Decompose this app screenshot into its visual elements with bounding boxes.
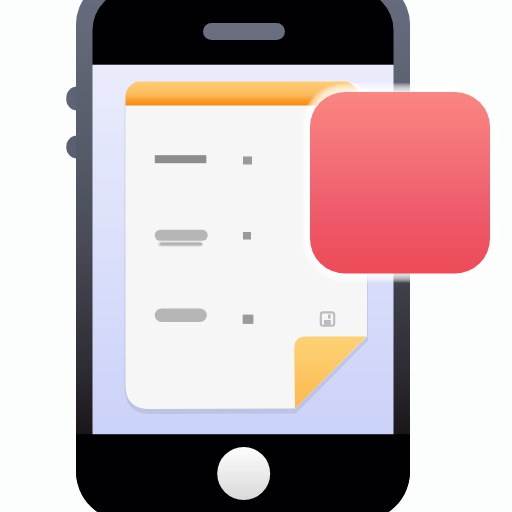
button[interactable]: Phone mockup illustration xyxy=(0,0,512,512)
